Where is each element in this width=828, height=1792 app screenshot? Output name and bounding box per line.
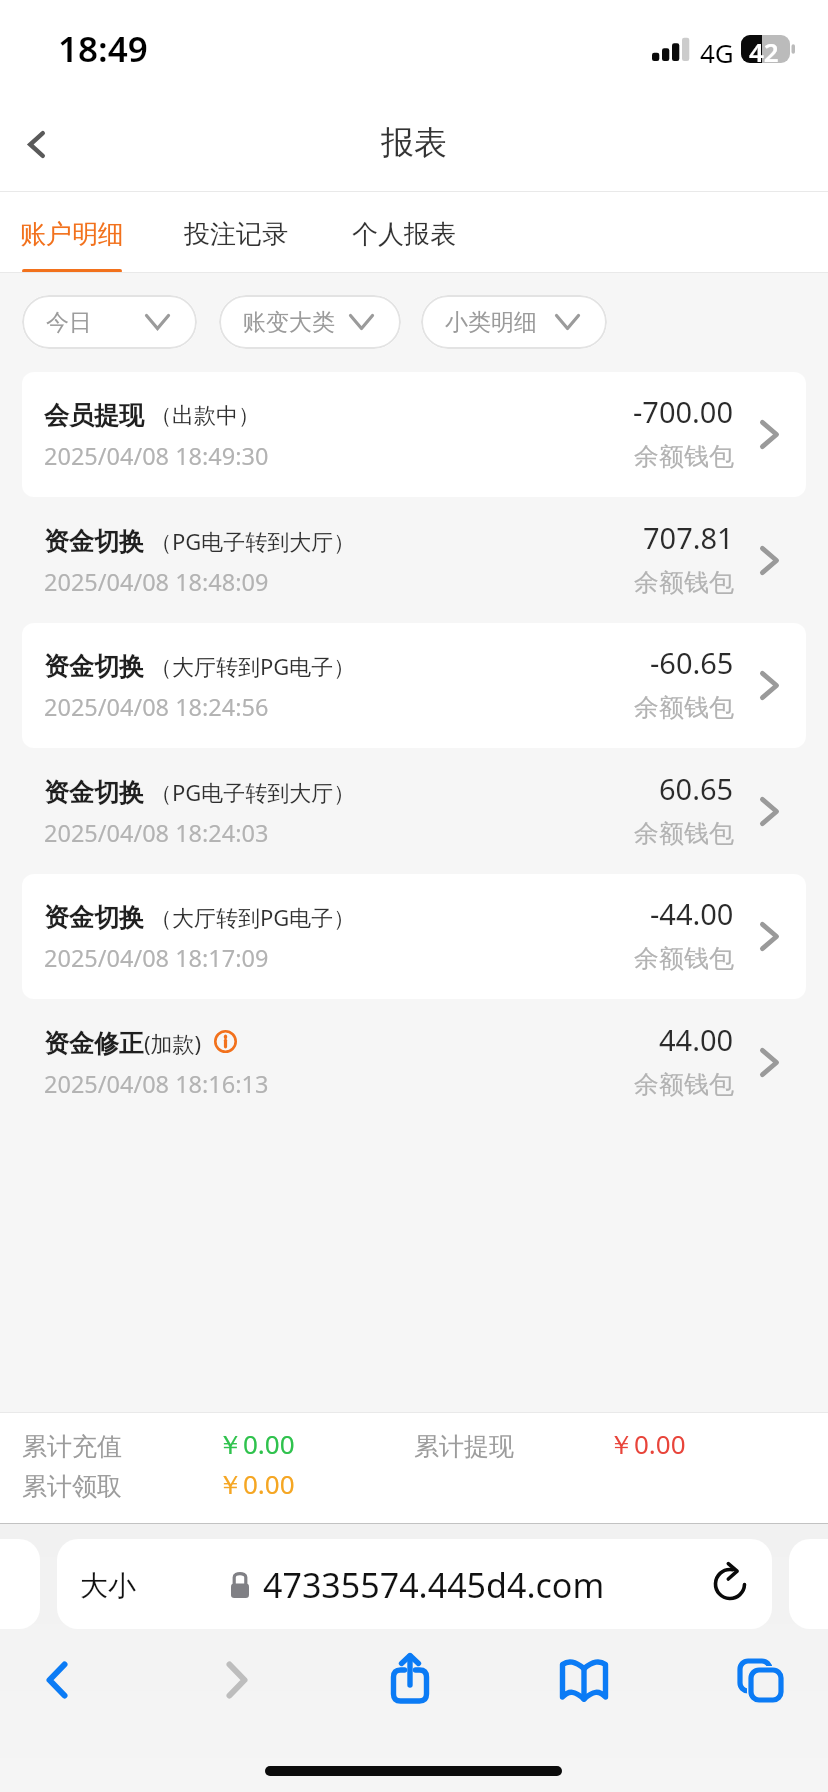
staticText: ￥0.00 [608, 1426, 686, 1462]
staticText: 2025/04/08 18:24:56 [44, 691, 269, 723]
staticText: 44.00 [659, 1020, 734, 1059]
button[interactable]: Share [370, 1640, 450, 1720]
staticText: （PG电子转到大厅） [150, 777, 356, 807]
staticText: 余额钱包 [634, 1069, 734, 1100]
staticText: 42 [749, 34, 779, 62]
staticText: 2025/04/08 18:17:09 [44, 942, 269, 974]
staticText: 2025/04/08 18:48:09 [44, 566, 269, 598]
staticText: 账户明细 [20, 218, 124, 251]
staticText: 资金切换 [44, 651, 144, 682]
staticText: 资金切换 [44, 777, 144, 808]
staticText: (加款) [144, 1028, 202, 1058]
button[interactable]: 资金修正 [22, 1000, 806, 1125]
button[interactable]: 资金切换 [22, 623, 806, 748]
staticText: 60.65 [659, 769, 734, 808]
staticText: 2025/04/08 18:49:30 [44, 440, 269, 472]
staticText: -700.00 [633, 392, 734, 431]
staticText: 18:49 [58, 25, 148, 73]
staticText: 余额钱包 [634, 567, 734, 598]
staticText: （出款中） [150, 402, 260, 430]
staticText: 余额钱包 [634, 818, 734, 849]
button[interactable]: Forward [197, 1640, 277, 1720]
staticText: 4G [700, 35, 734, 70]
button[interactable]: 资金切换 [22, 749, 806, 874]
staticText: 2025/04/08 18:24:03 [44, 817, 269, 849]
staticText: 累计充值 [22, 1431, 122, 1462]
staticText: （PG电子转到大厅） [150, 526, 356, 556]
staticText: 累计领取 [22, 1471, 122, 1502]
staticText: -44.00 [650, 894, 734, 933]
staticText: 707.81 [643, 518, 734, 557]
staticText: （大厅转到PG电子） [150, 651, 356, 681]
staticText: 今日 [46, 308, 92, 337]
button[interactable]: Bookmarks [544, 1640, 624, 1720]
staticText: 个人报表 [352, 218, 456, 251]
staticText: ￥0.00 [217, 1426, 295, 1462]
button[interactable]: 大小 [57, 1539, 772, 1629]
staticText: ￥0.00 [217, 1466, 295, 1502]
staticText: -60.65 [650, 643, 734, 682]
staticText: （大厅转到PG电子） [150, 902, 356, 932]
button[interactable]: 资金切换 [22, 498, 806, 623]
button[interactable]: Back [17, 1640, 97, 1720]
staticText: 会员提现 [44, 400, 144, 431]
button[interactable]: 账变大类 [219, 295, 401, 349]
button[interactable]: Reload [708, 1562, 752, 1606]
staticText: 余额钱包 [634, 441, 734, 472]
staticText: 报表 [381, 122, 447, 164]
button[interactable]: Tabs [720, 1640, 800, 1720]
staticText: 余额钱包 [634, 943, 734, 974]
staticText: 2025/04/08 18:16:13 [44, 1068, 269, 1100]
button[interactable]: 小类明细 [421, 295, 607, 349]
button[interactable]: 资金切换 [22, 874, 806, 999]
staticText: 账变大类 [243, 308, 335, 337]
button[interactable]: 投注记录 [178, 192, 294, 273]
staticText: 大小 [80, 1568, 136, 1603]
button[interactable]: 个人报表 [346, 192, 462, 273]
staticText: 累计提现 [414, 1431, 514, 1462]
button[interactable]: 今日 [22, 295, 197, 349]
staticText: 投注记录 [184, 218, 288, 251]
button[interactable]: Back [5, 113, 67, 175]
staticText: 47335574.445d4.com [263, 1562, 605, 1608]
staticText: 资金修正 [44, 1028, 144, 1059]
staticText: 资金切换 [44, 526, 144, 557]
staticText: 资金切换 [44, 902, 144, 933]
staticText: 余额钱包 [634, 692, 734, 723]
button[interactable]: 账户明细 [14, 192, 130, 273]
staticText: 小类明细 [445, 308, 537, 337]
button[interactable]: 会员提现 [22, 372, 806, 497]
